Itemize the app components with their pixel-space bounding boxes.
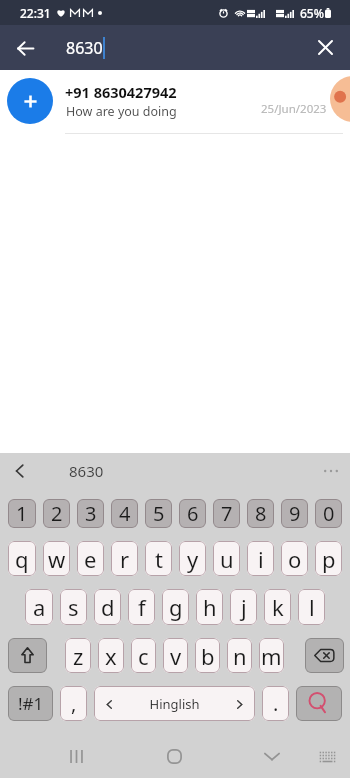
button[interactable]: 1 <box>8 499 36 528</box>
button[interactable]: e <box>77 541 104 576</box>
button[interactable]: More options <box>318 458 344 484</box>
staticText: 3 <box>85 500 97 527</box>
button[interactable]: Hide keyboard <box>249 734 294 778</box>
staticText: +91 8630427942 <box>65 82 177 102</box>
button[interactable]: , <box>60 686 87 721</box>
button[interactable]: s <box>60 589 87 625</box>
staticText: m <box>261 641 282 671</box>
staticText: 65% <box>300 5 324 21</box>
button[interactable]: 9 <box>281 499 308 528</box>
button[interactable]: b <box>195 638 220 673</box>
staticText: e <box>84 544 97 574</box>
button[interactable]: Change keyboard <box>305 734 350 778</box>
button[interactable]: !#1 <box>8 686 53 721</box>
button[interactable]: r <box>111 541 138 576</box>
staticText: l <box>309 592 315 622</box>
button[interactable]: q <box>8 541 36 576</box>
staticText: c <box>138 641 149 671</box>
staticText: j <box>241 592 247 622</box>
button[interactable]: y <box>179 541 206 576</box>
button[interactable]: o <box>281 541 308 576</box>
staticText: i <box>258 544 264 574</box>
staticText: g <box>169 592 183 622</box>
staticText: b <box>201 641 215 671</box>
button[interactable]: x <box>98 638 124 673</box>
button[interactable]: 4 <box>111 499 138 528</box>
staticText: s <box>68 592 79 622</box>
button[interactable]: Home <box>152 734 197 778</box>
staticText: x <box>105 641 117 671</box>
button[interactable]: 2 <box>43 499 70 528</box>
staticText: Hinglish <box>114 695 235 713</box>
button[interactable]: 6 <box>179 499 206 528</box>
staticText: 1 <box>16 500 28 527</box>
staticText: z <box>73 641 84 671</box>
staticText: p <box>322 544 336 574</box>
button[interactable]: z <box>65 638 91 673</box>
button[interactable]: Clear search <box>310 32 342 64</box>
button[interactable]: w <box>43 541 70 576</box>
button[interactable]: Previous suggestions <box>6 457 34 485</box>
button[interactable]: n <box>227 638 252 673</box>
staticText: v <box>170 641 182 671</box>
button[interactable]: Hinglish <box>94 686 255 721</box>
staticText: h <box>203 592 217 622</box>
button[interactable]: 8 <box>247 499 274 528</box>
button[interactable]: 3 <box>77 499 104 528</box>
button[interactable]: d <box>94 589 121 625</box>
staticText: w <box>48 544 66 574</box>
staticText: t <box>155 544 163 574</box>
button[interactable]: Recent apps <box>54 734 99 778</box>
button[interactable]: l <box>298 589 325 625</box>
staticText: n <box>233 641 247 671</box>
button[interactable]: p <box>315 541 342 576</box>
button[interactable]: v <box>163 638 188 673</box>
staticText: 7 <box>221 500 233 527</box>
staticText: 9 <box>289 500 301 527</box>
button[interactable]: 5 <box>145 499 172 528</box>
staticText: !#1 <box>18 692 44 715</box>
button[interactable]: . <box>262 686 289 721</box>
staticText: y <box>187 544 199 574</box>
staticText: 22:31 <box>20 5 51 21</box>
button[interactable]: m <box>259 638 284 673</box>
button[interactable]: t <box>145 541 172 576</box>
button[interactable]: a <box>25 589 53 625</box>
staticText: 8 <box>255 500 267 527</box>
button[interactable]: k <box>264 589 291 625</box>
staticText: 25/Jun/2023 <box>261 101 327 117</box>
button[interactable]: Backspace <box>305 638 344 673</box>
button[interactable]: c <box>131 638 156 673</box>
staticText: o <box>288 544 302 574</box>
staticText: q <box>15 544 29 574</box>
staticText: 2 <box>51 500 63 527</box>
button[interactable]: g <box>162 589 189 625</box>
button[interactable]: +91 8630427942 <box>0 70 350 134</box>
staticText: u <box>220 544 234 574</box>
staticText: , <box>71 690 77 717</box>
staticText: 8630 <box>69 461 104 481</box>
button[interactable]: i <box>247 541 274 576</box>
button[interactable]: Search <box>296 686 342 721</box>
staticText: How are you doing <box>66 103 177 120</box>
button[interactable]: f <box>128 589 155 625</box>
staticText: d <box>101 592 115 622</box>
button[interactable]: 7 <box>213 499 240 528</box>
staticText: k <box>272 592 284 622</box>
button[interactable]: Shift <box>8 638 47 673</box>
button[interactable]: 0 <box>315 499 342 528</box>
button[interactable]: j <box>230 589 257 625</box>
staticText: 8630 <box>66 37 103 59</box>
staticText: r <box>120 544 130 574</box>
staticText: 6 <box>187 500 199 527</box>
staticText: f <box>138 592 146 622</box>
button[interactable]: Back <box>9 32 41 64</box>
staticText: a <box>33 592 46 622</box>
staticText: 4 <box>119 500 131 527</box>
staticText: 0 <box>323 500 335 527</box>
staticText: . <box>273 690 279 717</box>
button[interactable]: u <box>213 541 240 576</box>
button[interactable]: h <box>196 589 223 625</box>
staticText: 5 <box>153 500 165 527</box>
